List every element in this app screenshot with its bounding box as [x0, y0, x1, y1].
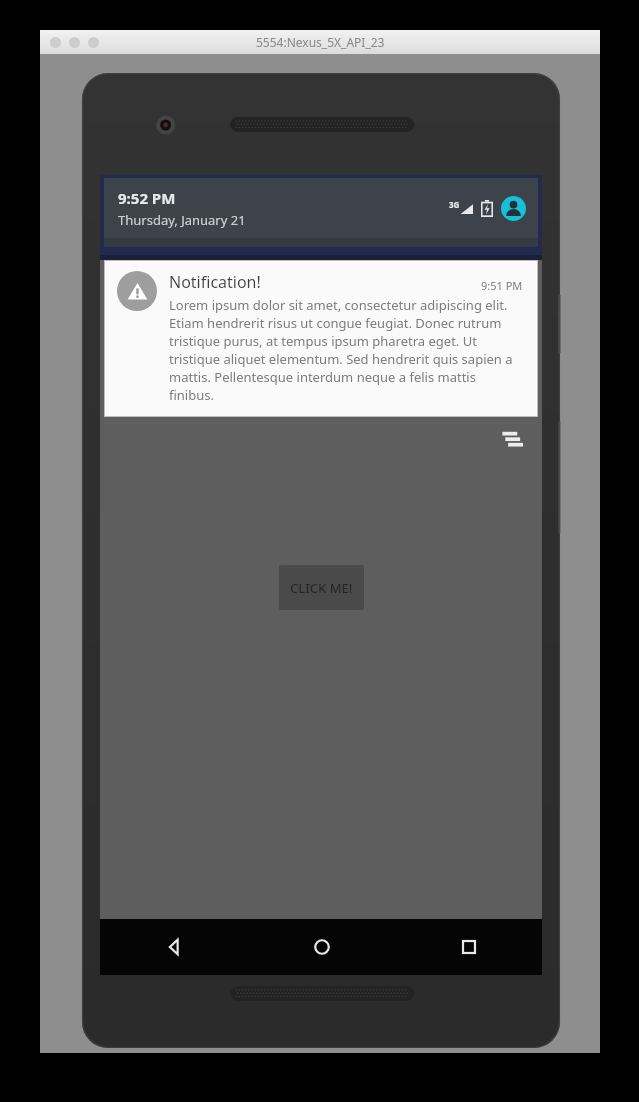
- staticText: Thursday, January 21: [118, 211, 246, 229]
- staticText: 9:52 PM: [118, 188, 176, 208]
- staticText: 5554:Nexus_5X_API_23: [256, 34, 385, 50]
- button[interactable]: Clear all notifications: [496, 423, 528, 455]
- button[interactable]: Home: [248, 919, 395, 975]
- staticText: Notification!: [169, 271, 481, 293]
- button[interactable]: CLICK ME!: [279, 565, 364, 610]
- staticText: CLICK ME!: [290, 579, 353, 597]
- button[interactable]: Recents: [395, 919, 542, 975]
- staticText: 9:51 PM: [481, 278, 523, 293]
- button[interactable]: User profile: [501, 196, 526, 221]
- staticText: 3G: [449, 199, 460, 210]
- button[interactable]: Notification!: [105, 261, 537, 416]
- button[interactable]: Back: [100, 919, 248, 975]
- staticText: Lorem ipsum dolor sit amet, consectetur …: [169, 296, 523, 404]
